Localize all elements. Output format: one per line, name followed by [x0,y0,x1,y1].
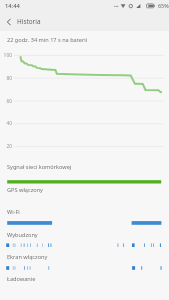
button[interactable]: Sygnał sieci komórkowej [0,163,169,185]
staticText: GPS włączony [7,186,43,194]
staticText: Historia [17,17,41,26]
staticText: 14:44 [5,2,20,10]
staticText: 22 godz. 34 min 17 s na baterii [7,36,88,44]
button[interactable]: Ładowanie [0,275,169,297]
staticText: 40 [0,120,12,127]
button[interactable]: Ekran włączony [0,253,169,275]
staticText: 20 [0,143,12,150]
staticText: 65% [158,2,169,9]
staticText: Sygnał sieci komórkowej [7,163,72,171]
staticText: 100 [0,52,12,59]
staticText: Wi-Fi [7,208,20,216]
staticText: Wybudzony [7,231,38,239]
button[interactable]: Wybudzony [0,231,169,253]
button[interactable]: Back [0,13,18,31]
staticText: 80 [0,75,12,82]
staticText: Ładowanie [7,275,36,283]
staticText: 60 [0,98,12,105]
staticText: Ekran włączony [7,253,48,261]
button[interactable]: GPS włączony [0,186,169,208]
button[interactable]: Wi-Fi [0,208,169,230]
